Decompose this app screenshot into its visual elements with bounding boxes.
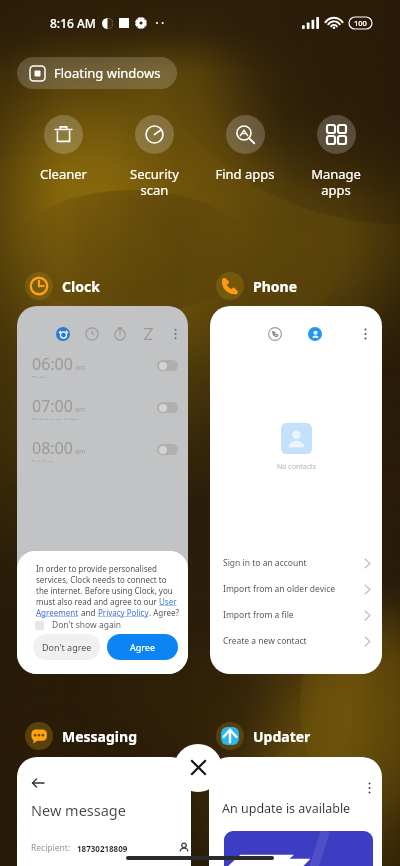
button[interactable]: Find apps — [200, 115, 290, 183]
button[interactable]: Sign in to an account — [210, 550, 382, 576]
staticText: Agree — [130, 641, 155, 653]
button[interactable]: Clock — [25, 272, 100, 300]
staticText: Security scan — [130, 165, 179, 198]
staticText: 8:16 AM — [50, 15, 96, 31]
button[interactable]: Security scan — [109, 115, 199, 198]
button[interactable]: Manage apps — [291, 115, 381, 198]
button[interactable]: No contacts — [210, 306, 382, 674]
staticText: Create a new contact — [223, 635, 307, 647]
staticText: am — [75, 447, 86, 457]
staticText: In order to provide personalised — [36, 563, 157, 574]
button[interactable]: Don't agree — [33, 634, 100, 660]
button[interactable]: Messaging — [25, 722, 137, 750]
staticText: Don't show again — [52, 619, 122, 631]
button[interactable]: Create a new contact — [210, 628, 382, 654]
staticText: Phone — [253, 277, 298, 296]
button[interactable]: Agree — [107, 634, 178, 660]
button[interactable]: Cleaner — [18, 115, 108, 183]
staticText: Messaging — [62, 727, 137, 746]
staticText: am — [75, 405, 86, 415]
button[interactable]: New message — [17, 757, 191, 866]
button[interactable]: Phone — [216, 272, 298, 300]
staticText: and — [79, 607, 98, 618]
staticText: 18730218809 — [77, 843, 128, 854]
staticText: No contacts — [277, 462, 316, 472]
staticText: Import from an older device — [223, 583, 336, 595]
button[interactable]: Import from a file — [210, 602, 382, 628]
staticText: Monday to Friday — [32, 416, 82, 420]
staticText: Find apps — [215, 165, 275, 183]
staticText: am — [75, 363, 86, 373]
button[interactable]: Close all apps — [174, 744, 222, 792]
staticText: Clock — [62, 277, 100, 296]
staticText: the internet. Before using Clock, you — [36, 585, 173, 596]
staticText: Daily — [32, 374, 46, 378]
staticText: Cleaner — [40, 165, 87, 183]
staticText: Don't agree — [42, 641, 92, 653]
staticText: . Agree? — [149, 607, 179, 618]
staticText: Sat Sun — [32, 458, 54, 462]
button[interactable]: Floating windows — [17, 57, 177, 89]
staticText: An update is available — [222, 800, 351, 817]
staticText: New message — [31, 800, 126, 820]
staticText: Floating windows — [54, 64, 161, 82]
button[interactable]: Updater — [216, 722, 311, 750]
staticText: Updater — [253, 727, 311, 746]
staticText: 100 — [354, 18, 367, 28]
staticText: must also read and agree to our — [36, 596, 159, 607]
button[interactable]: Import from an older device — [210, 576, 382, 602]
staticText: Agreement — [36, 607, 79, 618]
staticText: services, Clock needs to connect to — [36, 574, 167, 585]
staticText: Import from a file — [223, 609, 294, 621]
staticText: 07:00 — [32, 395, 73, 417]
staticText: 06:00 — [32, 353, 73, 375]
staticText: 08:00 — [32, 437, 73, 459]
staticText: Manage apps — [311, 165, 361, 198]
button[interactable]: An update is available — [209, 757, 382, 866]
staticText: Privacy Policy — [98, 607, 149, 618]
staticText: Sign in to an account — [223, 557, 307, 569]
staticText: Recipient: — [31, 842, 71, 854]
staticText: User — [159, 596, 177, 607]
button[interactable]: 06:00 — [17, 306, 188, 674]
